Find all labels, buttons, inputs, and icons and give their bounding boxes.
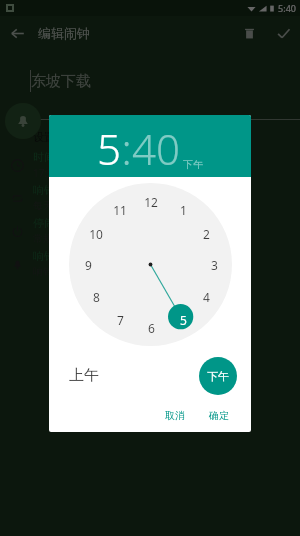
staticText: 设置	[33, 130, 55, 144]
button[interactable]: 上午	[69, 366, 99, 385]
staticText: 响铃	[33, 265, 53, 278]
staticText: 5	[180, 312, 187, 328]
staticText: 6	[148, 320, 155, 336]
staticText: 5	[97, 120, 121, 177]
button[interactable]: Ringtone	[5, 103, 41, 139]
button[interactable]: 确定	[201, 405, 237, 426]
button[interactable]: 下午	[199, 357, 237, 395]
staticText: 8	[93, 289, 100, 305]
staticText: 10	[89, 226, 103, 242]
staticText: 17:3	[33, 166, 53, 180]
button[interactable]: Delete	[232, 16, 266, 50]
button[interactable]: 停闹	[0, 214, 300, 247]
staticText: 9	[85, 257, 92, 273]
staticText: 12	[144, 194, 158, 210]
staticText: 确定	[209, 409, 229, 422]
staticText: 停闹	[33, 216, 55, 230]
staticText: 时间	[33, 150, 55, 164]
staticText: 7	[117, 312, 124, 328]
staticText: 上午	[69, 366, 99, 385]
button[interactable]: 时间	[0, 148, 300, 181]
staticText: 取消	[165, 409, 185, 422]
staticText: 5:40	[278, 2, 296, 14]
staticText: 常规	[33, 232, 53, 245]
button[interactable]: 响铃	[0, 247, 300, 280]
staticText: 东坡下载	[31, 72, 91, 91]
staticText: 响铃	[33, 183, 55, 197]
staticText: 下午	[207, 369, 229, 383]
staticText: 每天	[33, 199, 53, 212]
staticText: 编辑闹钟	[38, 25, 90, 41]
staticText: 响铃	[33, 249, 55, 263]
staticText: 40	[132, 120, 180, 177]
button[interactable]: 设置	[0, 126, 300, 148]
button[interactable]: Back	[0, 16, 34, 50]
staticText: 4	[203, 289, 210, 305]
button[interactable]: Save	[266, 16, 300, 50]
button[interactable]: 40	[132, 120, 180, 177]
staticText: :	[121, 120, 132, 177]
staticText: 2	[203, 226, 210, 242]
staticText: 11	[113, 202, 127, 218]
button[interactable]: 响铃	[0, 181, 300, 214]
staticText: 3	[211, 257, 218, 273]
button[interactable]: 下午	[183, 158, 203, 171]
button[interactable]: 取消	[157, 405, 193, 426]
staticText: 下午	[183, 158, 203, 171]
button[interactable]: 5	[97, 120, 121, 177]
staticText: 1	[180, 202, 187, 218]
